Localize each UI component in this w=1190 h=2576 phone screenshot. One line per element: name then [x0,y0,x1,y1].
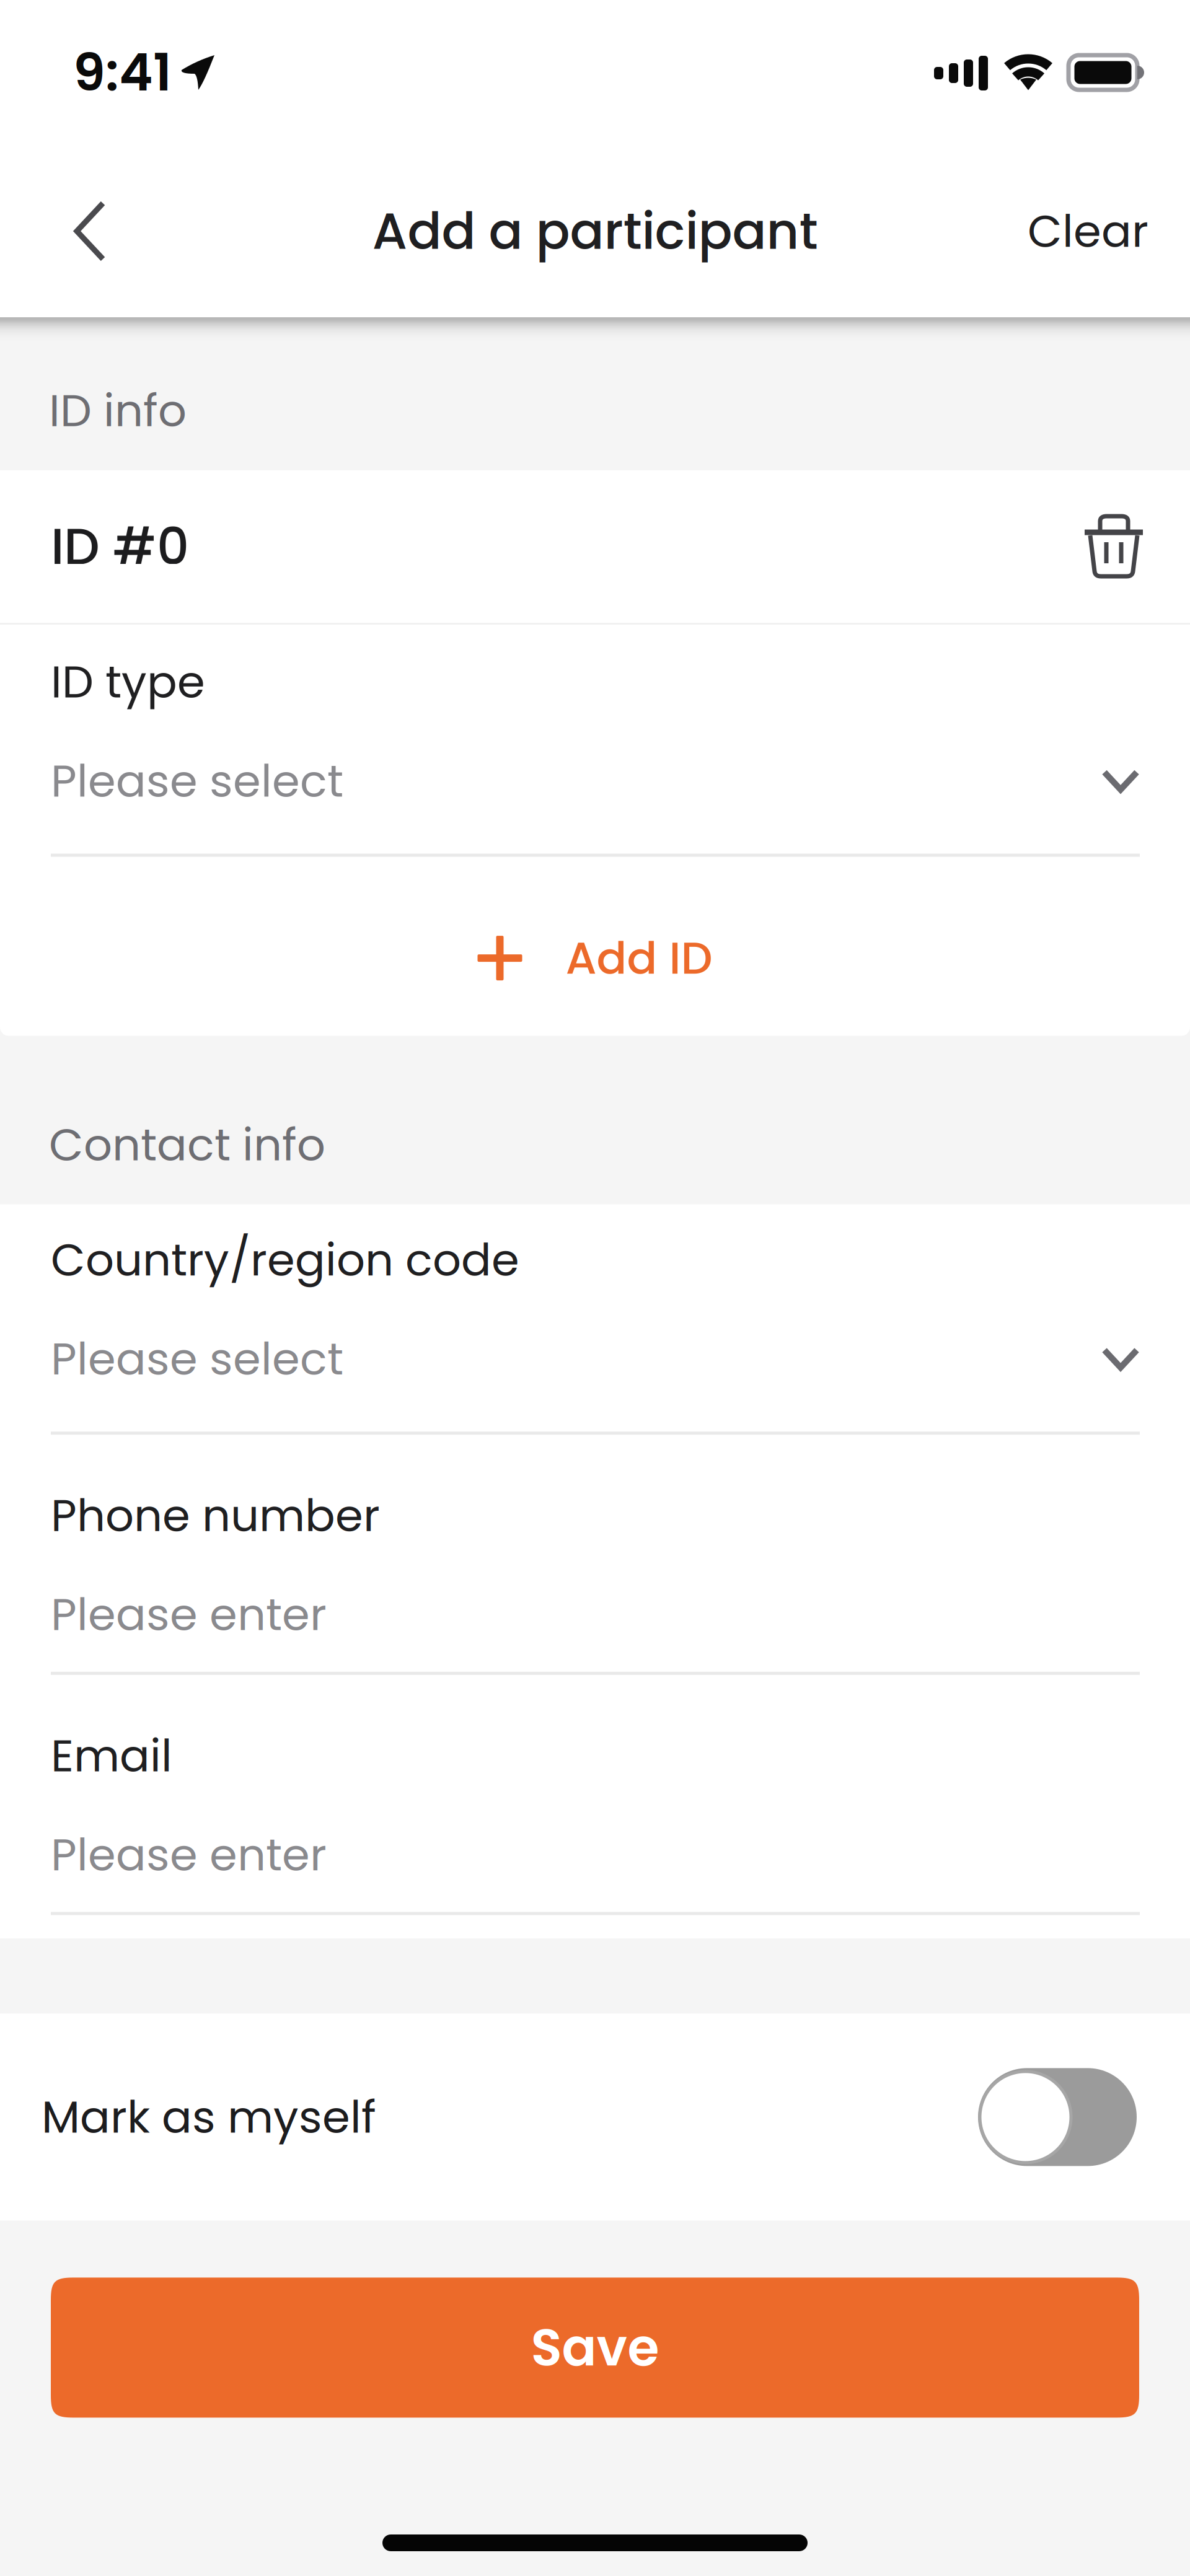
button[interactable]: Back [0,169,145,293]
staticText: Please select [51,750,343,812]
button[interactable]: Save [51,2278,1139,2418]
button[interactable]: Country/region code [0,1204,1190,1458]
staticText: Country/region code [51,1229,519,1291]
button[interactable]: Mark as myself [0,2014,1190,2221]
staticText: Add a participant [372,196,818,266]
staticText: Add ID [566,927,712,989]
button[interactable]: Email [0,1698,1190,1939]
button[interactable]: Clear [1003,169,1190,293]
button[interactable]: Add ID [0,880,1190,1036]
staticText: Phone number [51,1484,380,1547]
staticText: Contact info [49,1113,325,1176]
staticText: Please select [51,1328,343,1390]
staticText: ID #0 [51,511,189,582]
staticText: Mark as myself [42,2086,376,2148]
button[interactable]: Phone number [0,1458,1190,1698]
button[interactable]: ID type [0,625,1190,880]
staticText: ID info [49,379,187,442]
staticText: Save [531,2312,659,2383]
button[interactable]: Delete ID [1082,514,1145,579]
staticText: Email [51,1724,172,1787]
staticText: ID type [51,651,205,713]
staticText: 9:41 [73,37,172,108]
staticText: Please enter [51,1823,327,1886]
staticText: Clear [1028,200,1148,262]
staticText: Please enter [51,1583,327,1646]
